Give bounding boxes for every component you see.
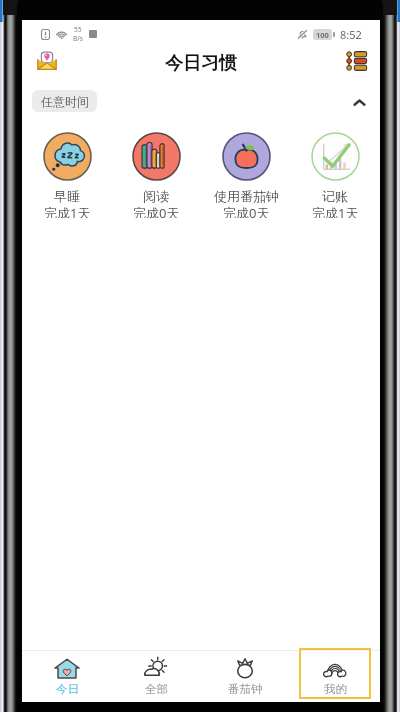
staticText: 完成1天	[44, 204, 91, 218]
button[interactable]: 任意时间	[32, 90, 97, 112]
staticText: B/s	[73, 34, 83, 43]
staticText: 番茄钟	[228, 682, 263, 696]
button[interactable]: Sort habits	[341, 48, 371, 74]
staticText: 全部	[145, 682, 168, 696]
button[interactable]: 使用番茄钟	[202, 130, 290, 218]
staticText: 任意时间	[41, 94, 89, 109]
staticText: 55	[74, 25, 82, 34]
staticText: 我的	[324, 682, 347, 696]
button[interactable]: Messages	[35, 48, 59, 72]
staticText: 记账	[322, 188, 348, 204]
staticText: 8:52	[340, 27, 362, 42]
staticText: 完成0天	[223, 204, 270, 218]
button[interactable]: 今日	[31, 648, 103, 699]
staticText: 早睡	[54, 188, 80, 204]
button[interactable]: Collapse section	[348, 91, 370, 113]
staticText: 今日习惯	[165, 52, 237, 75]
button[interactable]: 番茄钟	[209, 648, 281, 699]
staticText: 阅读	[143, 188, 169, 204]
button[interactable]: 早睡	[23, 130, 111, 218]
staticText: 完成1天	[312, 204, 359, 218]
staticText: 完成0天	[133, 204, 180, 218]
staticText: 使用番茄钟	[214, 188, 279, 204]
button[interactable]: 阅读	[112, 130, 200, 218]
button[interactable]: 我的	[299, 648, 371, 699]
button[interactable]: 记账	[291, 130, 379, 218]
staticText: 100	[316, 30, 329, 40]
staticText: 今日	[56, 682, 79, 696]
button[interactable]: 全部	[120, 648, 192, 699]
